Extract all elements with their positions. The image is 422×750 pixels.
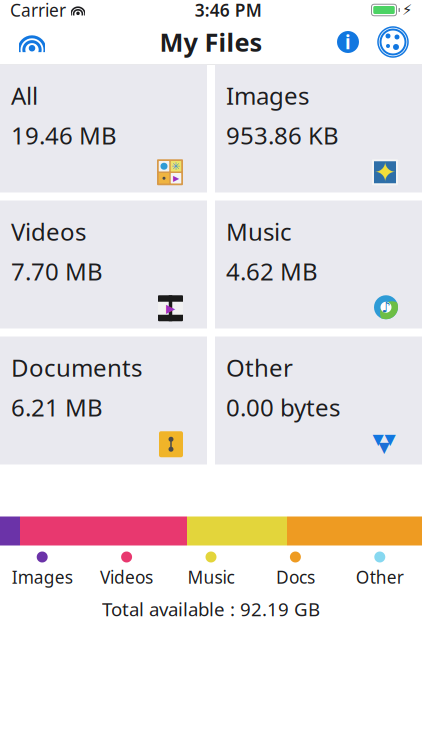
button[interactable]: All <box>0 64 207 192</box>
button[interactable]: Videos <box>0 200 207 328</box>
button[interactable]: Wi-Fi transfer <box>6 20 58 64</box>
staticText: Carrier <box>10 0 66 21</box>
staticText: ✳ <box>171 160 180 172</box>
staticText: Documents <box>11 351 142 383</box>
staticText: ▶ <box>173 174 179 183</box>
staticText: 19.46 MB <box>11 119 117 151</box>
staticText: ♪ <box>381 299 390 315</box>
staticText: ▼ <box>384 431 395 447</box>
staticText: Images <box>12 565 73 588</box>
staticText: My Files <box>159 25 262 59</box>
staticText: 0.00 bytes <box>226 391 340 423</box>
staticText: Music <box>226 215 292 247</box>
button[interactable]: Info <box>326 20 370 64</box>
staticText: 4.62 MB <box>226 255 318 287</box>
staticText: 7.70 MB <box>11 255 103 287</box>
staticText: Total available : 92.19 GB <box>102 596 320 621</box>
staticText: Other <box>226 351 293 383</box>
staticText: Images <box>226 79 309 111</box>
staticText: ⚡︎ <box>402 2 412 18</box>
staticText: ▼ <box>372 431 383 447</box>
button[interactable]: Browser <box>370 20 416 64</box>
staticText: Music <box>187 565 234 588</box>
staticText: 3:46 PM <box>195 0 262 21</box>
staticText: Videos <box>100 565 153 588</box>
staticText: i <box>345 30 351 54</box>
staticText: 6.21 MB <box>11 391 103 423</box>
button[interactable]: Documents <box>0 336 207 464</box>
staticText: ✦ <box>374 157 396 187</box>
staticText: Videos <box>11 215 86 247</box>
button[interactable]: Music <box>215 200 422 328</box>
staticText: All <box>11 79 38 111</box>
staticText: Other <box>356 565 404 588</box>
staticText: 953.86 KB <box>226 119 339 151</box>
staticText: Docs <box>276 565 315 588</box>
button[interactable]: Other <box>215 336 422 464</box>
staticText: ▼ <box>378 439 389 455</box>
staticText: ▶ <box>166 301 175 315</box>
button[interactable]: Images <box>215 64 422 192</box>
